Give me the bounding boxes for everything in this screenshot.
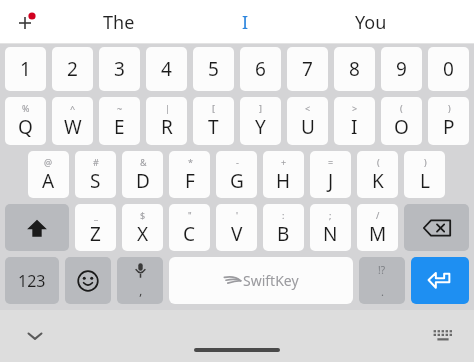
staticText: Z xyxy=(90,221,101,247)
staticText: # xyxy=(93,156,99,168)
button[interactable]: ^ xyxy=(52,97,93,145)
button[interactable]: " xyxy=(169,204,210,251)
staticText: . xyxy=(381,284,384,299)
staticText: V xyxy=(231,221,243,247)
button[interactable]: Punctuation xyxy=(359,257,405,304)
staticText: ] xyxy=(259,102,262,114)
button[interactable]: [ xyxy=(193,97,234,145)
button[interactable]: | xyxy=(146,97,187,145)
button[interactable]: Backspace xyxy=(404,204,469,251)
button[interactable]: * xyxy=(169,151,210,198)
staticText: _ xyxy=(94,209,98,221)
button[interactable]: The xyxy=(56,0,182,44)
button[interactable]: _ xyxy=(75,204,116,251)
staticText: ; xyxy=(329,209,332,221)
button[interactable]: 1 xyxy=(5,47,46,91)
staticText: | xyxy=(165,102,170,114)
staticText: : xyxy=(282,209,285,221)
button[interactable]: = xyxy=(310,151,351,198)
staticText: SwiftKey xyxy=(243,271,299,290)
staticText: ) xyxy=(448,102,451,114)
staticText: 1 xyxy=(20,56,31,82)
button[interactable]: ~ xyxy=(99,97,140,145)
staticText: U xyxy=(301,114,315,140)
staticText: < xyxy=(305,102,311,114)
button[interactable]: $ xyxy=(122,204,163,251)
staticText: X xyxy=(137,221,149,247)
staticText: O xyxy=(394,114,409,140)
staticText: 9 xyxy=(396,56,407,82)
staticText: G xyxy=(230,168,244,194)
staticText: A xyxy=(42,168,55,194)
staticText: " xyxy=(188,209,192,221)
button[interactable]: Switch keyboard xyxy=(426,319,460,353)
staticText: 2 xyxy=(67,56,78,82)
button[interactable]: You xyxy=(308,0,434,44)
staticText: 3 xyxy=(114,56,125,82)
staticText: % xyxy=(22,102,30,114)
staticText: & xyxy=(140,156,147,168)
staticText: Y xyxy=(255,114,266,140)
button[interactable]: ) xyxy=(404,151,445,198)
button[interactable]: 3 xyxy=(99,47,140,91)
button[interactable]: + xyxy=(263,151,304,198)
button[interactable]: 4 xyxy=(146,47,187,91)
button[interactable]: % xyxy=(5,97,46,145)
button[interactable]: Hide keyboard xyxy=(18,319,52,353)
button[interactable]: ) xyxy=(428,97,469,145)
staticText: ) xyxy=(424,156,427,168)
button[interactable]: ( xyxy=(381,97,422,145)
staticText: ~ xyxy=(117,102,123,114)
button[interactable]: # xyxy=(75,151,116,198)
staticText: Q xyxy=(18,114,33,140)
button[interactable]: - xyxy=(216,151,257,198)
staticText: F xyxy=(185,168,195,194)
staticText: 4 xyxy=(161,56,172,82)
staticText: / xyxy=(376,209,380,221)
button[interactable]: ; xyxy=(310,204,351,251)
button[interactable]: Add, new items available xyxy=(8,4,44,40)
staticText: ( xyxy=(400,102,403,114)
staticText: 0 xyxy=(443,56,454,82)
staticText: S xyxy=(90,168,101,194)
staticText: 123 xyxy=(18,270,46,292)
button[interactable]: Space xyxy=(169,257,353,304)
button[interactable]: ] xyxy=(240,97,281,145)
button[interactable]: > xyxy=(334,97,375,145)
staticText: D xyxy=(136,168,150,194)
button[interactable]: 5 xyxy=(193,47,234,91)
button[interactable]: Emoji xyxy=(65,257,111,304)
button[interactable]: < xyxy=(287,97,328,145)
button[interactable]: 123 xyxy=(5,257,59,304)
staticText: N xyxy=(323,221,338,247)
button[interactable]: Voice input, comma xyxy=(117,257,163,304)
staticText: P xyxy=(443,114,455,140)
staticText: H xyxy=(276,168,291,194)
button[interactable]: I xyxy=(182,0,308,44)
staticText: E xyxy=(114,114,125,140)
staticText: C xyxy=(183,221,196,247)
staticText: @ xyxy=(44,156,53,168)
button[interactable]: 0 xyxy=(428,47,469,91)
button[interactable]: ( xyxy=(357,151,398,198)
staticText: + xyxy=(281,156,287,168)
button[interactable]: 2 xyxy=(52,47,93,91)
button[interactable]: @ xyxy=(28,151,69,198)
button[interactable]: 6 xyxy=(240,47,281,91)
staticText: K xyxy=(372,168,384,194)
button[interactable]: 8 xyxy=(334,47,375,91)
staticText: M xyxy=(369,221,387,247)
staticText: I xyxy=(351,114,358,140)
button[interactable]: Enter xyxy=(411,257,469,304)
staticText: 5 xyxy=(208,56,219,82)
staticText: T xyxy=(208,114,219,140)
staticText: 6 xyxy=(255,56,266,82)
button[interactable]: 7 xyxy=(287,47,328,91)
button[interactable]: ' xyxy=(216,204,257,251)
button[interactable]: & xyxy=(122,151,163,198)
button[interactable]: Shift xyxy=(5,204,69,251)
staticText: ^ xyxy=(70,102,76,114)
button[interactable]: / xyxy=(357,204,398,251)
button[interactable]: 9 xyxy=(381,47,422,91)
button[interactable]: : xyxy=(263,204,304,251)
